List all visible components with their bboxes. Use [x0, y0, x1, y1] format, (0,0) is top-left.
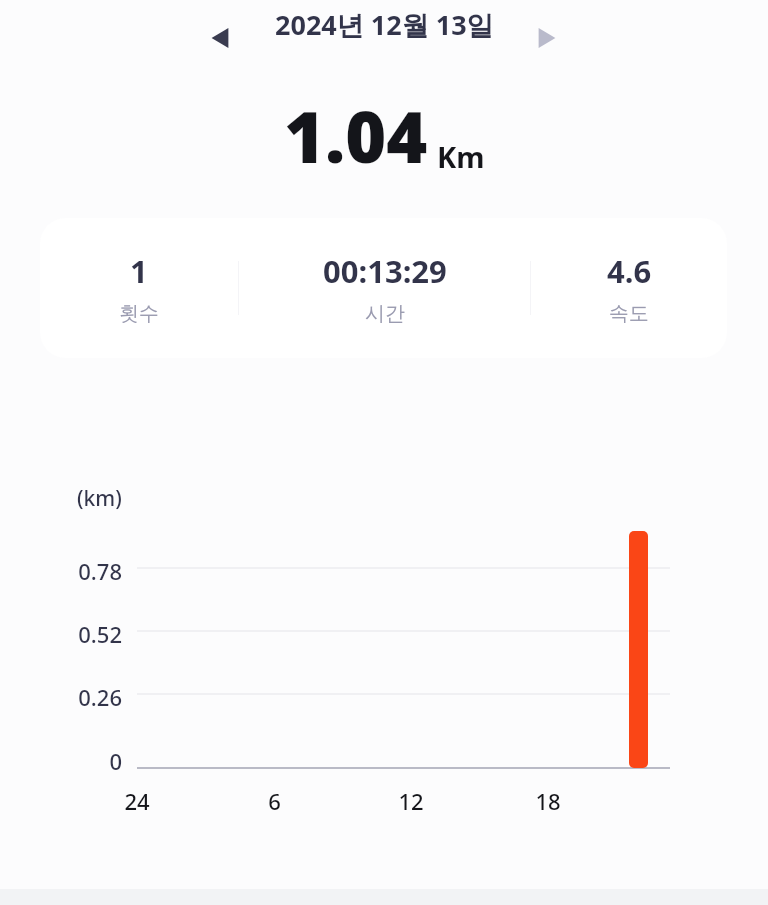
button[interactable]: 1 [40, 218, 727, 358]
staticText: 12 [398, 786, 424, 816]
button[interactable]: Previous day [196, 14, 244, 62]
staticText: 시간 [365, 301, 405, 326]
button[interactable]: Next day [523, 14, 571, 62]
staticText: 1 [130, 250, 148, 292]
button[interactable]: 1 [40, 244, 238, 332]
staticText: 횟수 [119, 301, 159, 326]
staticText: 1.04 [284, 88, 428, 183]
staticText: 24 [124, 786, 150, 816]
staticText: 속도 [609, 301, 649, 326]
staticText: Km [437, 137, 485, 176]
staticText: 18 [535, 786, 561, 816]
staticText: 0.52 [78, 619, 122, 649]
staticText: 0 [109, 746, 122, 776]
button[interactable]: 4.6 [531, 244, 727, 332]
staticText: 00:13:29 [323, 250, 447, 292]
staticText: 0.78 [78, 556, 122, 586]
button[interactable]: 2024년 12월 13일 [265, 2, 504, 47]
staticText: 2024년 12월 13일 [275, 6, 494, 43]
staticText: 6 [268, 786, 281, 816]
staticText: 0.26 [78, 682, 122, 712]
staticText: (km) [77, 484, 122, 513]
button[interactable]: 00:13:29 [239, 244, 530, 332]
staticText: 4.6 [607, 250, 652, 292]
